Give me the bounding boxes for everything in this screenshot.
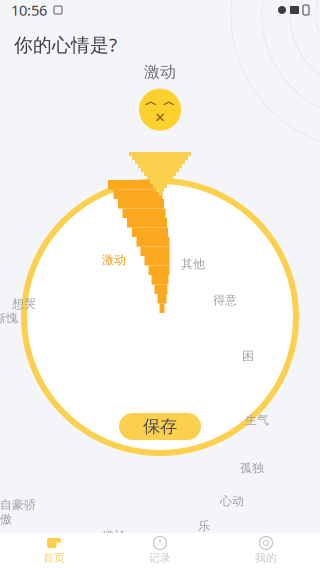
staticText: 激动 bbox=[102, 253, 126, 267]
staticText: 其他 bbox=[181, 257, 205, 271]
staticText: 我的 bbox=[255, 551, 277, 564]
staticText: 孤独 bbox=[240, 461, 264, 475]
staticText: 尴尬 bbox=[102, 529, 126, 543]
staticText: 激动 bbox=[144, 62, 176, 82]
staticText: 首页 bbox=[43, 551, 65, 564]
button[interactable]: 记录 bbox=[107, 533, 213, 568]
staticText: 想哭 bbox=[12, 297, 36, 311]
button[interactable]: 我的 bbox=[213, 533, 319, 568]
staticText: 记录 bbox=[149, 551, 171, 564]
staticText: ︿ bbox=[145, 94, 157, 109]
staticText: 心动 bbox=[220, 494, 244, 508]
staticText: 自豪骄傲 bbox=[0, 497, 36, 527]
staticText: ︿ bbox=[163, 94, 175, 109]
staticText: 你的心情是? bbox=[14, 32, 117, 57]
staticText: 保存 bbox=[143, 416, 177, 437]
staticText: 卡哇伊 bbox=[150, 533, 186, 547]
staticText: 困 bbox=[242, 349, 254, 363]
staticText: 10:56 bbox=[11, 0, 47, 20]
staticText: 生气 bbox=[245, 413, 269, 427]
button[interactable]: 首页 bbox=[1, 533, 107, 568]
button[interactable]: 保存 bbox=[119, 413, 201, 440]
staticText: ✕ bbox=[154, 110, 165, 125]
staticText: 惭愧 bbox=[0, 311, 18, 325]
staticText: 乐 bbox=[198, 519, 210, 533]
staticText: 得意 bbox=[213, 293, 237, 307]
